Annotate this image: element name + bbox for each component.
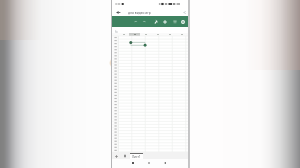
button[interactable]: Done — [180, 19, 186, 25]
button[interactable]: Home — [144, 159, 154, 167]
button[interactable]: Undo — [131, 16, 140, 27]
button[interactable]: Back — [160, 159, 170, 167]
button[interactable]: Format — [151, 16, 160, 27]
button[interactable]: Insert — [160, 16, 169, 27]
staticText: Лист1 — [132, 155, 141, 159]
staticText: fx — [115, 29, 118, 34]
button[interactable]: Back — [115, 8, 122, 16]
button[interactable]: Share — [181, 8, 188, 16]
button[interactable]: Recents — [128, 159, 138, 167]
button[interactable]: Filter — [170, 16, 179, 27]
button[interactable]: All sheets — [122, 153, 128, 159]
button[interactable]: Redo — [139, 16, 148, 27]
button[interactable]: Add sheet — [113, 153, 119, 159]
button[interactable]: Лист1 — [130, 153, 143, 159]
staticText: для видео игр — [128, 10, 151, 14]
